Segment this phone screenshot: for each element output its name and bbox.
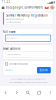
button[interactable]: Open in Gmail	[45, 6, 49, 9]
staticText: name@example.com	[7, 53, 21, 55]
staticText: ▁▃▅	[47, 0, 53, 3]
staticText: Submit	[39, 68, 48, 72]
button[interactable]: I consent to receive updates	[3, 61, 53, 65]
staticText: I consent to receive updates	[9, 63, 28, 65]
staticText: Never submit passwords through Google Fo…	[11, 78, 45, 80]
button[interactable]: Submit	[37, 67, 51, 73]
button[interactable]: Forward	[11, 85, 22, 100]
button[interactable]: Site information	[2, 6, 5, 9]
staticText: This content is neither created nor endo…	[9, 81, 47, 83]
button[interactable]: docs.google.com/forms/d/e	[5, 6, 44, 9]
staticText: Jane Appleseed	[7, 37, 18, 39]
button[interactable]: Search	[22, 85, 34, 100]
staticText: Clear form	[5, 69, 12, 71]
staticText: Email address	[3, 47, 20, 50]
staticText: docs.google.com/forms/d/e	[6, 6, 44, 9]
button[interactable]: name@example.com	[5, 52, 51, 57]
staticText: 11:22	[1, 0, 10, 4]
button[interactable]: Jane Appleseed	[5, 35, 51, 41]
button[interactable]: Tabs	[34, 85, 45, 100]
button[interactable]: Account	[49, 5, 56, 10]
staticText: sessions. * Required	[6, 21, 21, 23]
button[interactable]: Back	[0, 85, 11, 100]
staticText: Summer Workshop Registration	[6, 14, 48, 17]
button[interactable]: Menu	[45, 85, 56, 100]
staticText: Join us for a day of hands-on	[6, 18, 24, 20]
staticText: Full name	[3, 30, 16, 34]
button[interactable]: Clear form	[5, 69, 12, 71]
